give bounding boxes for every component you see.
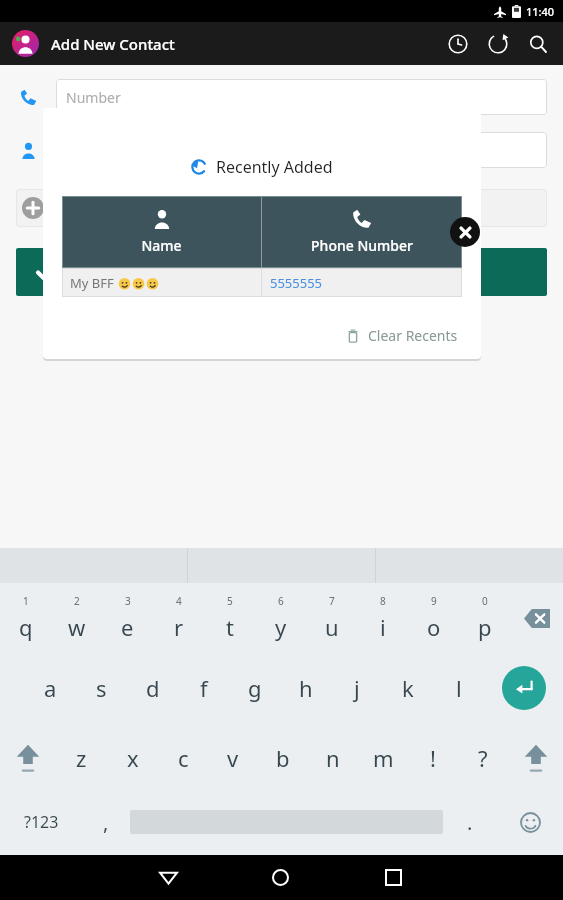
staticText: q	[19, 612, 33, 642]
staticText: a	[44, 673, 57, 703]
button[interactable]: 1	[0, 583, 51, 653]
button[interactable]: .	[443, 793, 497, 851]
staticText: p	[478, 612, 492, 642]
button[interactable]: Search	[525, 31, 551, 57]
staticText: ,	[103, 809, 109, 836]
button[interactable]: 0	[459, 583, 510, 653]
staticText: Recently Added	[216, 156, 333, 178]
button[interactable]: l	[433, 653, 484, 723]
staticText: m	[373, 743, 394, 773]
staticText: n	[326, 743, 340, 773]
staticText: 11:40	[526, 4, 555, 19]
button[interactable]: Backspace	[510, 583, 563, 653]
staticText: h	[299, 673, 313, 703]
button[interactable]: Add	[16, 189, 547, 227]
button[interactable]: x	[107, 723, 158, 793]
button[interactable]: 7	[306, 583, 357, 653]
staticText: 9	[431, 594, 437, 608]
staticText: y	[275, 612, 287, 642]
button[interactable]: n	[308, 723, 358, 793]
button[interactable]: 2	[51, 583, 102, 653]
button[interactable]: Number	[56, 79, 547, 115]
staticText: My BFF	[70, 274, 118, 292]
staticText: Add New Contact	[51, 34, 175, 54]
button[interactable]: 4	[153, 583, 204, 653]
staticText: z	[76, 743, 87, 773]
staticText: r	[174, 612, 184, 642]
staticText: i	[380, 612, 386, 642]
button[interactable]: Emoji	[497, 793, 563, 851]
staticText: 2	[74, 594, 80, 608]
staticText: 4	[176, 594, 182, 608]
staticText: Clear Recents	[368, 326, 458, 345]
staticText: e	[121, 612, 134, 642]
staticText: f	[200, 673, 208, 703]
button[interactable]: v	[208, 723, 258, 793]
button[interactable]: 6	[255, 583, 306, 653]
button[interactable]: j	[331, 653, 382, 723]
staticText: 3	[125, 594, 131, 608]
button[interactable]: Save contact	[16, 248, 547, 296]
staticText: Phone Number	[311, 236, 413, 255]
button[interactable]: Name	[62, 196, 261, 268]
button[interactable]: 8	[357, 583, 408, 653]
button[interactable]: My BFF	[62, 268, 462, 297]
staticText: 6	[278, 594, 284, 608]
button[interactable]: f	[178, 653, 229, 723]
button[interactable]: 3	[102, 583, 153, 653]
button[interactable]: s	[76, 653, 127, 723]
staticText: 1	[23, 594, 29, 608]
staticText: v	[227, 743, 239, 773]
staticText: k	[402, 673, 414, 703]
button[interactable]: a	[25, 653, 76, 723]
button[interactable]: g	[229, 653, 280, 723]
staticText: u	[325, 612, 339, 642]
button[interactable]: 5	[204, 583, 255, 653]
button[interactable]: ?123	[0, 793, 82, 851]
button[interactable]: z	[56, 723, 107, 793]
button[interactable]: Refresh	[485, 31, 511, 57]
button[interactable]: Enter	[484, 653, 563, 723]
staticText: 8	[380, 594, 386, 608]
staticText: ?123	[24, 811, 59, 833]
staticText: d	[146, 673, 160, 703]
button[interactable]: Close	[450, 217, 480, 247]
button[interactable]: Phone Number	[262, 196, 462, 268]
button[interactable]: c	[158, 723, 208, 793]
staticText: j	[354, 673, 360, 703]
staticText: c	[178, 743, 189, 773]
button[interactable]: Recent apps	[337, 855, 450, 900]
button[interactable]: Shift	[508, 723, 563, 793]
button[interactable]: Clear Recents	[342, 322, 462, 349]
staticText: Name	[141, 236, 182, 255]
button[interactable]: ,	[82, 793, 130, 851]
button[interactable]: History	[445, 31, 471, 57]
button[interactable]: d	[127, 653, 178, 723]
button[interactable]: Shift	[0, 723, 56, 793]
staticText: !	[430, 743, 436, 773]
button[interactable]: b	[258, 723, 308, 793]
staticText: w	[68, 612, 86, 642]
staticText: g	[248, 673, 262, 703]
button[interactable]: m	[358, 723, 408, 793]
staticText: .	[467, 809, 473, 836]
button[interactable]: ?	[458, 723, 508, 793]
button[interactable]: h	[280, 653, 331, 723]
staticText: b	[276, 743, 290, 773]
staticText: t	[226, 612, 234, 642]
button[interactable]: Back	[112, 855, 224, 900]
button[interactable]: Home	[224, 855, 337, 900]
button[interactable]: !	[408, 723, 458, 793]
button[interactable]: 9	[408, 583, 459, 653]
button[interactable]	[56, 132, 547, 168]
staticText: 0	[482, 594, 488, 608]
staticText: 7	[329, 594, 335, 608]
staticText: ?	[478, 743, 488, 773]
staticText: l	[456, 673, 462, 703]
button[interactable]: k	[382, 653, 433, 723]
staticText: x	[127, 743, 139, 773]
